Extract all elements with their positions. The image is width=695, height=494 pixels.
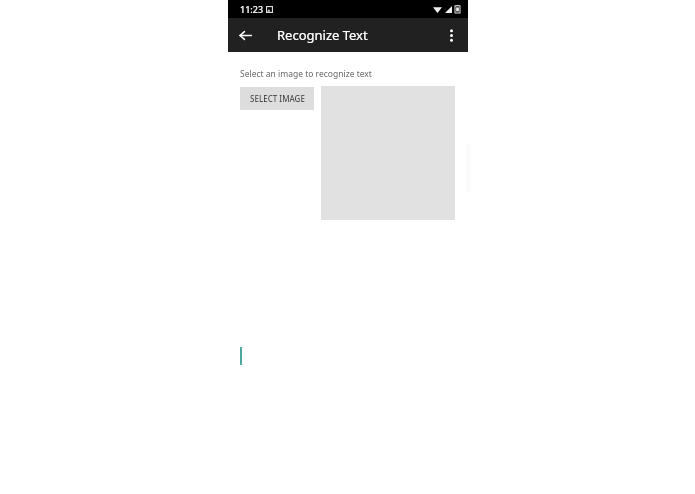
- staticText: 11:23: [240, 3, 264, 15]
- staticText: SELECT IMAGE: [250, 93, 305, 104]
- button[interactable]: Back: [233, 23, 257, 47]
- button[interactable]: SELECT IMAGE: [240, 87, 314, 110]
- button[interactable]: More options: [439, 23, 463, 47]
- staticText: Recognize Text: [277, 26, 368, 44]
- staticText: Select an image to recognize text: [240, 68, 372, 80]
